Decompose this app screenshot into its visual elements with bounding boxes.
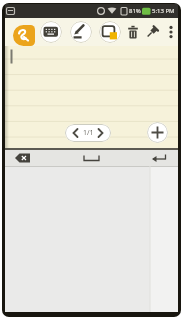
button[interactable] [13,25,35,46]
button[interactable] [163,24,179,40]
button[interactable] [147,122,168,143]
button[interactable] [125,24,141,40]
staticText: 81% [129,7,141,15]
button[interactable] [13,150,41,166]
button[interactable] [75,150,108,166]
staticText: 5:13 PM [152,7,175,15]
button[interactable] [70,21,92,43]
button[interactable] [99,21,121,43]
button[interactable] [147,150,173,166]
button[interactable] [145,24,161,40]
button[interactable] [40,21,62,43]
button[interactable]: 1/1 [65,124,111,142]
staticText: 1/1 [83,128,94,138]
